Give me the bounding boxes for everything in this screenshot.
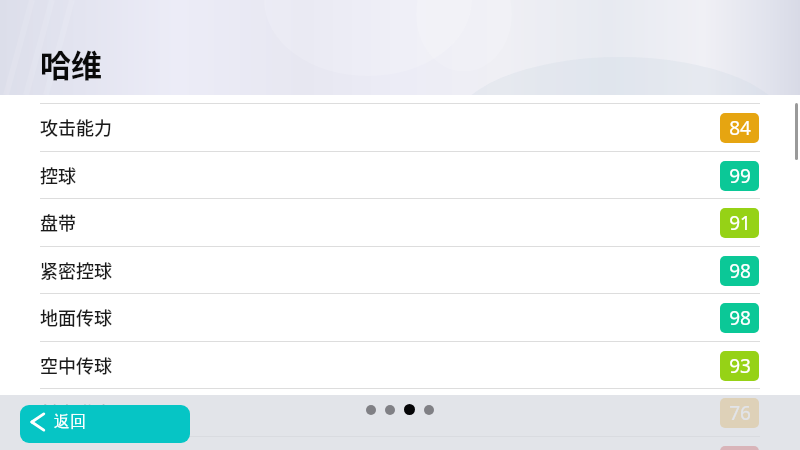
staticText: 返回 [54,412,86,432]
button[interactable]: 空中传球 [0,341,800,389]
staticText: 98 [729,258,751,284]
staticText: 地面传球 [40,304,112,330]
staticText: 哈维 [40,41,102,86]
button[interactable]: 紧密控球 [0,246,800,294]
button[interactable]: 射门准度 [0,388,800,436]
staticText: 控球 [40,162,76,188]
button[interactable]: 返回 [20,405,190,443]
button[interactable]: Page 4 [424,405,434,415]
button[interactable]: 控球 [0,151,800,199]
staticText: 紧密控球 [40,257,112,283]
button[interactable]: Page 2 [385,405,395,415]
button[interactable]: 射门力量 [0,436,800,450]
staticText: 84 [729,115,751,141]
button[interactable]: Page 1 [366,405,376,415]
staticText: 93 [729,353,751,379]
staticText: 空中传球 [40,352,112,378]
staticText: 射门准度 [40,399,112,425]
staticText: 76 [729,400,751,426]
staticText: 盘带 [40,209,76,235]
staticText: 98 [729,305,751,331]
staticText: 91 [729,210,751,236]
button[interactable]: 盘带 [0,198,800,246]
button[interactable]: 攻击能力 [0,103,800,151]
button[interactable]: Page 3 [404,404,415,415]
button[interactable]: 地面传球 [0,293,800,341]
staticText: 攻击能力 [40,114,112,140]
staticText: 99 [729,163,751,189]
